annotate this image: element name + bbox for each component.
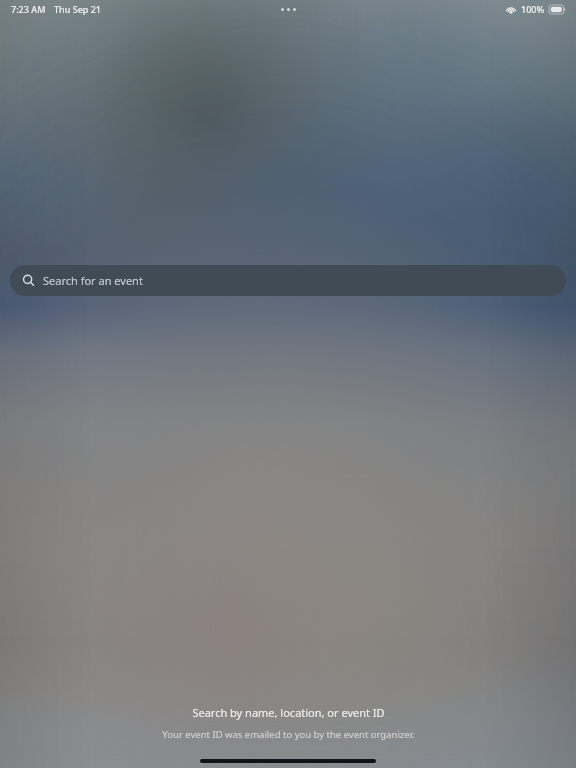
button[interactable]: Search for an event xyxy=(10,265,566,296)
staticText: Search by name, location, or event ID xyxy=(192,705,385,720)
staticText: Your event ID was emailed to you by the … xyxy=(162,728,415,741)
staticText: 7:23 AM xyxy=(11,3,46,15)
staticText: 100% xyxy=(521,3,545,15)
staticText: Thu Sep 21 xyxy=(54,3,102,15)
staticText: Search for an event xyxy=(43,273,143,288)
